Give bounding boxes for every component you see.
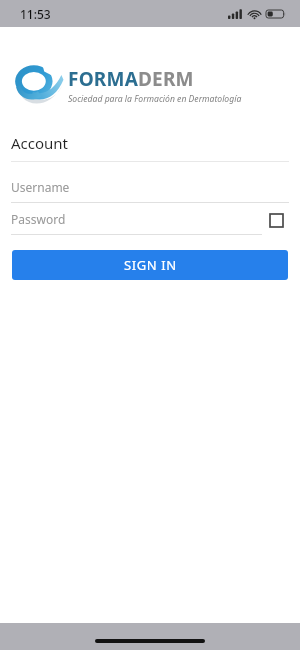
staticText: DERM	[138, 66, 194, 92]
other: FormaDerm logo	[12, 59, 64, 111]
staticText: FORMA	[68, 66, 138, 92]
staticText: Username	[11, 179, 70, 195]
staticText: SIGN IN	[124, 256, 177, 274]
staticText: Sociedad para la Formación en Dermatolog…	[68, 93, 242, 105]
staticText: Account	[11, 133, 69, 153]
button[interactable]: SIGN IN	[12, 250, 288, 280]
staticText: Password	[11, 211, 66, 227]
button[interactable]: Username	[0, 179, 300, 203]
button[interactable]: Show password	[266, 210, 286, 230]
button[interactable]: Password	[0, 211, 266, 235]
staticText: 11:53	[20, 6, 51, 22]
